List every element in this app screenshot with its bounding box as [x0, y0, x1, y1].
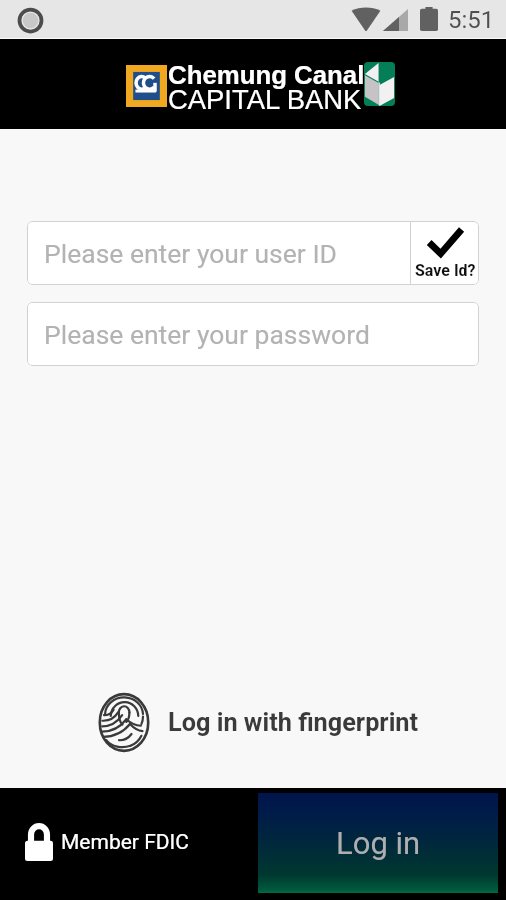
button[interactable]: Please enter your user ID	[27, 221, 409, 285]
staticText: Chemung Canal	[168, 61, 365, 90]
staticText: Log in	[336, 825, 421, 861]
button[interactable]: Fingerprint	[98, 693, 419, 752]
staticText: 5:51	[448, 6, 495, 34]
staticText: Member FDIC	[61, 830, 189, 855]
other: Save Id	[427, 227, 463, 258]
staticText: Please enter your password	[44, 319, 370, 350]
button[interactable]: Log in	[258, 793, 498, 893]
button[interactable]: Save Id	[411, 221, 479, 285]
button[interactable]: Member FDIC	[25, 823, 189, 861]
staticText: Please enter your user ID	[44, 238, 338, 269]
staticText: Log in with fingerprint	[168, 708, 419, 738]
button[interactable]: Please enter your password	[27, 302, 479, 366]
other: Fingerprint	[98, 693, 150, 752]
staticText: CAPITAL BANK	[168, 84, 362, 115]
staticText: Save Id?	[415, 261, 476, 280]
